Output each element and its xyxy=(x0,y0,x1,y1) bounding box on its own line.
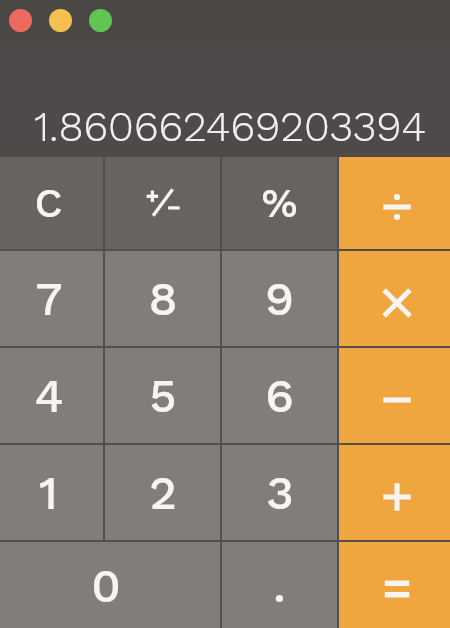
button[interactable]: % xyxy=(222,157,337,249)
button[interactable]: C xyxy=(0,157,103,249)
staticText: 7 xyxy=(35,271,63,326)
staticText: 9 xyxy=(265,271,294,326)
staticText: 8 xyxy=(148,271,178,326)
staticText: % xyxy=(261,179,298,227)
button[interactable]: . xyxy=(222,542,337,628)
staticText: 3 xyxy=(266,465,294,520)
button[interactable]: Minimize window xyxy=(49,9,72,32)
staticText: . xyxy=(273,558,286,613)
staticText: 1.860662469203394 xyxy=(34,101,427,151)
button[interactable]: 6 xyxy=(222,348,337,443)
button[interactable]: Equals xyxy=(339,542,450,628)
button[interactable]: Add xyxy=(339,445,450,540)
button[interactable]: 8 xyxy=(105,251,220,346)
button[interactable]: 0 xyxy=(0,542,220,628)
button[interactable]: Plus minus xyxy=(105,157,220,249)
button[interactable]: 5 xyxy=(105,348,220,443)
button[interactable]: 1 xyxy=(0,445,103,540)
staticText: 1 xyxy=(39,465,58,520)
staticText: 0 xyxy=(91,558,121,613)
button[interactable]: Divide xyxy=(339,157,450,249)
button[interactable]: Zoom window xyxy=(89,9,112,32)
staticText: 6 xyxy=(265,368,294,423)
button[interactable]: 3 xyxy=(222,445,337,540)
button[interactable]: 4 xyxy=(0,348,103,443)
staticText: 2 xyxy=(149,465,177,520)
button[interactable]: 9 xyxy=(222,251,337,346)
staticText: 4 xyxy=(34,368,64,423)
staticText: C xyxy=(34,179,63,227)
staticText: 5 xyxy=(149,368,177,423)
button[interactable]: Multiply xyxy=(339,251,450,346)
button[interactable]: Subtract xyxy=(339,348,450,443)
button[interactable]: 7 xyxy=(0,251,103,346)
button[interactable]: 2 xyxy=(105,445,220,540)
button[interactable]: Close window xyxy=(9,9,32,32)
